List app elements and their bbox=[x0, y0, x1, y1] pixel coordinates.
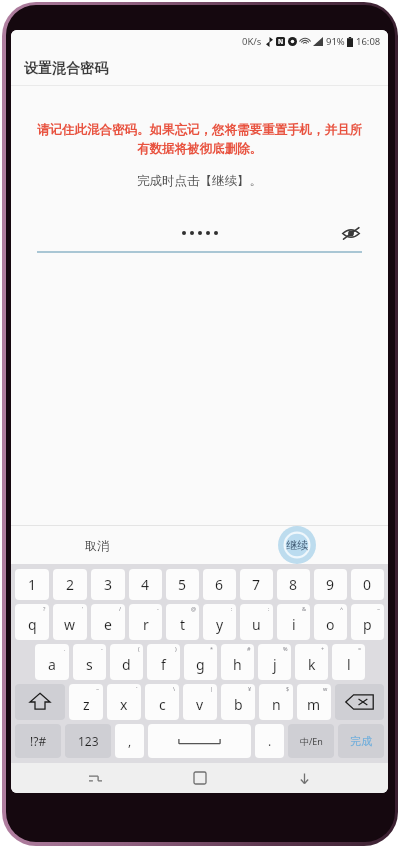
button[interactable]: !?# bbox=[15, 724, 61, 758]
staticText: = bbox=[358, 645, 362, 652]
staticText: ^ bbox=[340, 605, 344, 612]
button[interactable]: 中/En bbox=[288, 724, 334, 758]
staticText: e bbox=[104, 615, 112, 634]
button[interactable]: 4 bbox=[129, 569, 162, 600]
button[interactable]: 5 bbox=[166, 569, 199, 600]
button[interactable]: 123 bbox=[65, 724, 111, 758]
button[interactable]: Backspace bbox=[335, 684, 384, 720]
button[interactable]: 0 bbox=[351, 569, 384, 600]
button[interactable]: Toggle password visibility bbox=[340, 222, 362, 244]
staticText: 0 bbox=[363, 575, 372, 594]
button[interactable]: . bbox=[255, 724, 284, 758]
staticText: l bbox=[347, 655, 351, 674]
button[interactable]: ~ bbox=[69, 684, 103, 720]
staticText: w bbox=[323, 685, 328, 692]
button[interactable]: , bbox=[115, 724, 144, 758]
button[interactable]: Recents bbox=[75, 763, 115, 793]
button[interactable]: Hide keyboard bbox=[284, 763, 324, 793]
button[interactable]: w bbox=[297, 684, 331, 720]
button[interactable]: 7 bbox=[240, 569, 273, 600]
staticText: . bbox=[268, 733, 272, 749]
staticText: \ bbox=[173, 685, 176, 692]
staticText: & bbox=[302, 605, 307, 612]
button[interactable]: ` bbox=[107, 684, 141, 720]
button[interactable]: 1 bbox=[15, 569, 49, 600]
staticText: t bbox=[180, 615, 186, 634]
button[interactable]: Password field bbox=[37, 219, 362, 253]
button[interactable]: 8 bbox=[277, 569, 310, 600]
staticText: - bbox=[157, 605, 159, 612]
staticText: 0K/s bbox=[242, 35, 262, 48]
staticText: w bbox=[64, 615, 76, 634]
button[interactable]: ? bbox=[15, 604, 49, 640]
button[interactable]: @ bbox=[166, 604, 199, 640]
staticText: 5 bbox=[178, 575, 187, 594]
button[interactable]: $ bbox=[259, 684, 293, 720]
button[interactable]: ( bbox=[110, 644, 143, 680]
staticText: s bbox=[86, 655, 93, 674]
staticText: d bbox=[122, 655, 131, 674]
button[interactable]: - bbox=[129, 604, 162, 640]
staticText: 6 bbox=[215, 575, 224, 594]
button[interactable]: Home bbox=[180, 763, 220, 793]
staticText: @ bbox=[191, 605, 196, 612]
button[interactable]: = bbox=[332, 644, 365, 680]
staticText: 16:08 bbox=[356, 35, 381, 48]
button[interactable]: ^ bbox=[314, 604, 347, 640]
button[interactable]: ~ bbox=[351, 604, 384, 640]
staticText: y bbox=[216, 615, 224, 634]
button[interactable]: ¥ bbox=[221, 684, 255, 720]
button[interactable]: 取消 bbox=[73, 532, 121, 559]
staticText: 完成 bbox=[350, 734, 372, 748]
staticText: | bbox=[210, 685, 214, 692]
staticText: : bbox=[231, 605, 233, 612]
staticText: . bbox=[64, 645, 66, 652]
staticText: 4 bbox=[141, 575, 150, 594]
staticText: + bbox=[321, 645, 325, 652]
staticText: 继续 bbox=[286, 538, 308, 552]
button[interactable]: 继续 bbox=[264, 526, 330, 564]
staticText: o bbox=[326, 615, 335, 634]
staticText: ) bbox=[175, 645, 177, 652]
staticText: f bbox=[161, 655, 166, 674]
button[interactable]: : bbox=[240, 604, 273, 640]
button[interactable]: - bbox=[73, 644, 106, 680]
staticText: i bbox=[292, 615, 296, 634]
button[interactable]: ) bbox=[147, 644, 180, 680]
staticText: ¥ bbox=[248, 685, 252, 692]
staticText: 完成时点击【继续】。 bbox=[137, 173, 262, 189]
button[interactable]: % bbox=[258, 644, 291, 680]
button[interactable]: . bbox=[35, 644, 69, 680]
staticText: b bbox=[234, 695, 243, 714]
staticText: !?# bbox=[30, 733, 47, 749]
staticText: j bbox=[273, 655, 277, 674]
staticText: h bbox=[233, 655, 242, 674]
button[interactable]: \ bbox=[145, 684, 179, 720]
staticText: 123 bbox=[78, 733, 99, 749]
button[interactable]: & bbox=[277, 604, 310, 640]
button[interactable]: 完成 bbox=[338, 724, 384, 758]
button[interactable]: | bbox=[183, 684, 217, 720]
staticText: 91% bbox=[326, 35, 345, 48]
staticText: ` bbox=[136, 685, 138, 692]
staticText: x bbox=[120, 695, 128, 714]
button[interactable]: 2 bbox=[53, 569, 87, 600]
staticText: % bbox=[283, 645, 288, 652]
button[interactable]: Space bbox=[148, 724, 251, 758]
button[interactable]: Shift bbox=[15, 684, 65, 720]
staticText: 取消 bbox=[85, 538, 109, 553]
button[interactable]: * bbox=[184, 644, 217, 680]
button[interactable]: / bbox=[91, 604, 125, 640]
button[interactable]: 9 bbox=[314, 569, 347, 600]
button[interactable]: ' bbox=[53, 604, 87, 640]
button[interactable]: + bbox=[295, 644, 328, 680]
button[interactable]: : bbox=[203, 604, 236, 640]
staticText: 设置混合密码 bbox=[24, 60, 108, 78]
button[interactable]: 6 bbox=[203, 569, 236, 600]
button[interactable]: # bbox=[221, 644, 254, 680]
staticText: v bbox=[196, 695, 204, 714]
staticText: - bbox=[101, 645, 103, 652]
staticText: 中/En bbox=[300, 735, 323, 747]
button[interactable]: 3 bbox=[91, 569, 125, 600]
staticText: , bbox=[128, 733, 132, 749]
